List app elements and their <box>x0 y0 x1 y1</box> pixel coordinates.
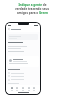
button[interactable]: Cards <box>16 87 18 91</box>
button[interactable]: Home <box>11 87 13 91</box>
button[interactable]: Rewards <box>28 87 30 91</box>
staticText: amigos para o Green <box>17 11 48 15</box>
button[interactable] <box>8 75 39 78</box>
button[interactable]: Back <box>8 28 10 30</box>
button[interactable] <box>8 34 38 40</box>
button[interactable] <box>8 56 39 67</box>
button[interactable] <box>8 71 39 74</box>
staticText: Indique a gente de <box>18 3 47 7</box>
staticText: verdade trazendo seus <box>15 7 49 11</box>
button[interactable]: Profile <box>33 87 35 91</box>
button[interactable]: Pay <box>22 87 24 91</box>
button[interactable] <box>8 78 39 81</box>
